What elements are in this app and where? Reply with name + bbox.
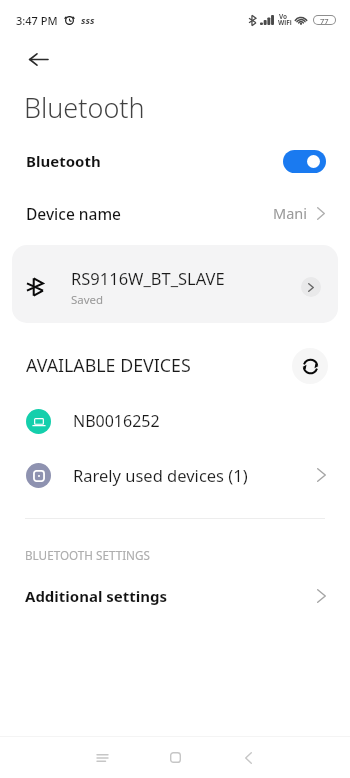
button[interactable]: Back	[20, 41, 56, 77]
staticText: BLUETOOTH SETTINGS	[25, 547, 150, 563]
staticText: 77	[320, 16, 329, 24]
staticText: Additional settings	[25, 586, 168, 606]
staticText: sss	[81, 14, 95, 27]
staticText: Vo	[279, 13, 288, 21]
staticText: Mani	[273, 203, 307, 223]
staticText: 3:47 PM	[16, 13, 58, 28]
staticText: Bluetooth	[24, 89, 145, 126]
button[interactable]: Bluetooth	[0, 139, 350, 183]
button[interactable]: Refresh	[292, 348, 328, 384]
staticText: Rarely used devices (1)	[73, 464, 248, 486]
staticText: AVAILABLE DEVICES	[26, 353, 191, 377]
staticText: Saved	[71, 292, 104, 308]
button[interactable]: Additional settings	[0, 574, 350, 618]
staticText: NB0016252	[73, 410, 160, 432]
button[interactable]: Rarely used devices (1)	[0, 453, 350, 497]
button[interactable]: RS9116W_BT_SLAVE	[12, 245, 338, 323]
button[interactable]: Home	[157, 737, 193, 778]
button[interactable]: Recent apps	[84, 737, 120, 778]
staticText: Bluetooth	[26, 151, 101, 171]
button[interactable]: Back	[230, 737, 266, 778]
button[interactable]: Device name	[0, 191, 350, 235]
staticText: WiFi	[278, 18, 292, 27]
button[interactable]: NB0016252	[0, 399, 350, 443]
staticText: Device name	[26, 203, 121, 224]
staticText: RS9116W_BT_SLAVE	[71, 267, 225, 289]
